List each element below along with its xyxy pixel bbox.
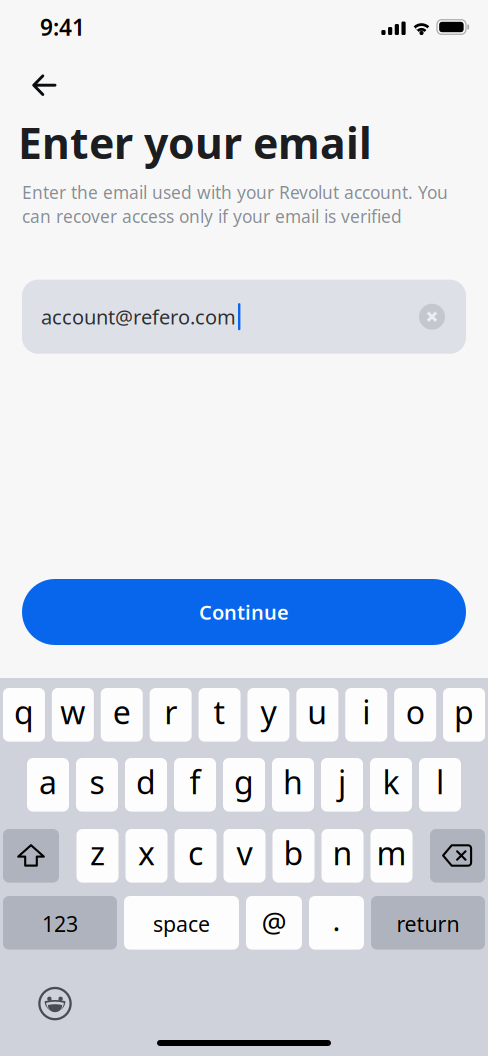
staticText: account@refero.com — [41, 303, 236, 330]
staticText: b — [283, 832, 303, 874]
staticText: d — [136, 761, 156, 803]
button[interactable]: 123 — [3, 896, 117, 950]
staticText: i — [362, 691, 370, 733]
button[interactable]: b — [272, 829, 314, 883]
button[interactable]: h — [272, 758, 314, 812]
button[interactable]: l — [419, 758, 461, 812]
staticText: t — [213, 691, 225, 733]
staticText: z — [90, 832, 105, 874]
button[interactable]: @ — [246, 896, 302, 950]
button[interactable]: z — [76, 829, 118, 883]
staticText: k — [382, 761, 399, 803]
staticText: space — [153, 910, 210, 938]
staticText: p — [454, 691, 474, 733]
staticText: v — [236, 832, 252, 874]
staticText: Enter your email — [18, 114, 372, 171]
staticText: a — [39, 761, 57, 803]
staticText: x — [138, 832, 155, 874]
button[interactable]: g — [223, 758, 265, 812]
button[interactable]: c — [174, 829, 216, 883]
button[interactable]: a — [27, 758, 69, 812]
button[interactable]: d — [125, 758, 167, 812]
staticText: m — [376, 832, 406, 874]
button[interactable]: v — [223, 829, 265, 883]
button[interactable]: y — [247, 688, 289, 742]
button[interactable]: Clear text — [417, 302, 447, 332]
button[interactable]: s — [76, 758, 118, 812]
staticText: 9:41 — [40, 12, 85, 42]
button[interactable]: p — [443, 688, 485, 742]
button[interactable]: o — [394, 688, 436, 742]
button[interactable]: q — [3, 688, 45, 742]
button[interactable]: space — [124, 896, 239, 950]
button[interactable]: Delete — [430, 829, 485, 883]
staticText: g — [234, 761, 254, 803]
button[interactable]: i — [345, 688, 387, 742]
button[interactable]: . — [309, 896, 364, 950]
staticText: n — [332, 832, 352, 874]
staticText: 123 — [42, 910, 78, 938]
staticText: r — [164, 691, 177, 733]
button[interactable]: Shift — [3, 829, 59, 883]
button[interactable]: r — [150, 688, 192, 742]
button[interactable]: Emoji keyboard — [35, 984, 75, 1024]
staticText: e — [113, 691, 131, 733]
staticText: y — [260, 691, 276, 733]
staticText: Enter the email used with your Revolut a… — [22, 181, 448, 228]
staticText: h — [283, 761, 303, 803]
staticText: Continue — [199, 599, 289, 625]
button[interactable]: e — [101, 688, 143, 742]
staticText: j — [338, 761, 346, 803]
staticText: q — [14, 691, 34, 733]
staticText: u — [307, 691, 327, 733]
staticText: s — [89, 761, 104, 803]
staticText: l — [436, 761, 444, 803]
button[interactable]: w — [52, 688, 94, 742]
button[interactable]: return — [371, 896, 485, 950]
button[interactable]: n — [321, 829, 363, 883]
staticText: return — [396, 910, 459, 938]
staticText: c — [188, 832, 203, 874]
button[interactable]: Continue — [22, 579, 466, 645]
button[interactable]: m — [370, 829, 412, 883]
button[interactable]: u — [296, 688, 338, 742]
staticText: . — [332, 900, 340, 939]
button[interactable]: f — [174, 758, 216, 812]
staticText: @ — [261, 903, 286, 940]
button[interactable]: k — [370, 758, 412, 812]
button[interactable]: Back — [0, 54, 78, 110]
button[interactable]: j — [321, 758, 363, 812]
button[interactable]: t — [198, 688, 240, 742]
staticText: w — [60, 691, 85, 733]
button[interactable]: x — [125, 829, 167, 883]
staticText: o — [406, 691, 425, 733]
staticText: f — [189, 761, 200, 803]
